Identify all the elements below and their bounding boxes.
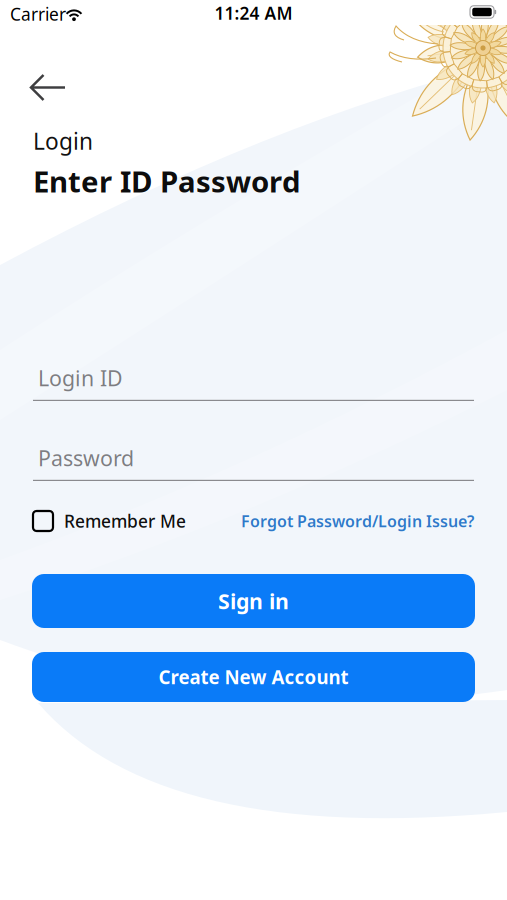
button[interactable]: Forgot Password/Login Issue?: [204, 507, 474, 535]
staticText: Sign in: [218, 587, 289, 615]
staticText: Login ID: [38, 364, 123, 392]
staticText: Login: [33, 126, 93, 156]
staticText: Remember Me: [64, 509, 186, 532]
staticText: Enter ID Password: [33, 161, 301, 200]
staticText: Password: [38, 444, 134, 472]
button[interactable]: [29, 73, 67, 101]
button[interactable]: Login ID: [33, 355, 474, 401]
staticText: 11:24 AM: [214, 1, 292, 24]
staticText: Carrier: [10, 2, 66, 25]
staticText: Forgot Password/Login Issue?: [241, 510, 474, 532]
button[interactable]: Create New Account: [32, 652, 475, 702]
button[interactable]: Password: [33, 435, 474, 481]
button[interactable]: Remember Me: [33, 507, 248, 535]
button[interactable]: Sign in: [32, 574, 475, 628]
staticText: Create New Account: [158, 665, 348, 689]
